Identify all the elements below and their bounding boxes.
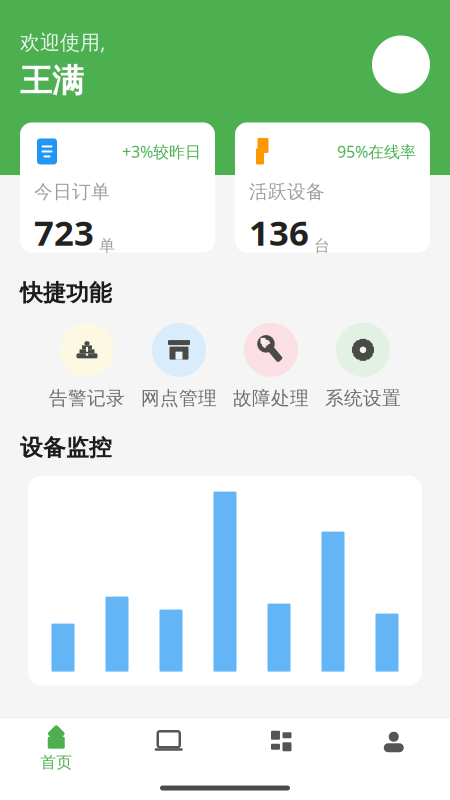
- button[interactable]: 个人头像: [372, 35, 430, 93]
- staticText: 故障处理: [233, 387, 309, 410]
- staticText: 欢迎使用,: [20, 29, 105, 55]
- button[interactable]: 我的: [337, 724, 450, 776]
- button[interactable]: 95%在线率: [235, 122, 430, 252]
- staticText: 活跃设备: [249, 180, 325, 203]
- staticText: 今日订单: [34, 180, 110, 203]
- staticText: 首页: [40, 753, 72, 772]
- button[interactable]: 故障处理: [225, 323, 317, 410]
- button[interactable]: +3%较昨日: [20, 122, 215, 252]
- staticText: 台: [314, 236, 330, 255]
- staticText: 快捷功能: [20, 279, 112, 307]
- staticText: 单: [99, 236, 115, 255]
- button[interactable]: 告警记录: [41, 323, 133, 410]
- staticText: 王满: [20, 61, 84, 100]
- staticText: 136: [249, 209, 309, 255]
- staticText: 网点管理: [141, 387, 217, 410]
- button[interactable]: 设备: [112, 724, 225, 776]
- button[interactable]: 网点管理: [133, 323, 225, 410]
- button[interactable]: 首页: [0, 722, 112, 778]
- staticText: 系统设置: [325, 387, 401, 410]
- staticText: 告警记录: [49, 387, 125, 410]
- staticText: +3%较昨日: [122, 141, 201, 162]
- button[interactable]: 工作台: [225, 724, 337, 776]
- staticText: 设备监控: [20, 434, 112, 462]
- button[interactable]: 系统设置: [317, 323, 409, 410]
- staticText: 95%在线率: [337, 141, 416, 162]
- staticText: 723: [34, 209, 94, 255]
